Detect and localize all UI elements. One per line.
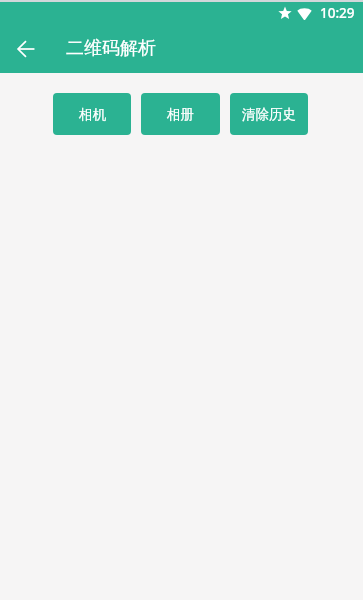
staticText: 二维码解析 <box>66 37 156 60</box>
button[interactable]: 清除历史 <box>230 93 308 135</box>
button[interactable]: 相册 <box>141 93 220 135</box>
button[interactable]: 相机 <box>53 93 131 135</box>
staticText: 相册 <box>167 106 194 123</box>
button[interactable]: Back <box>6 29 46 69</box>
staticText: 10:29 <box>320 4 355 22</box>
staticText: 相机 <box>79 106 106 123</box>
staticText: 清除历史 <box>242 106 296 123</box>
